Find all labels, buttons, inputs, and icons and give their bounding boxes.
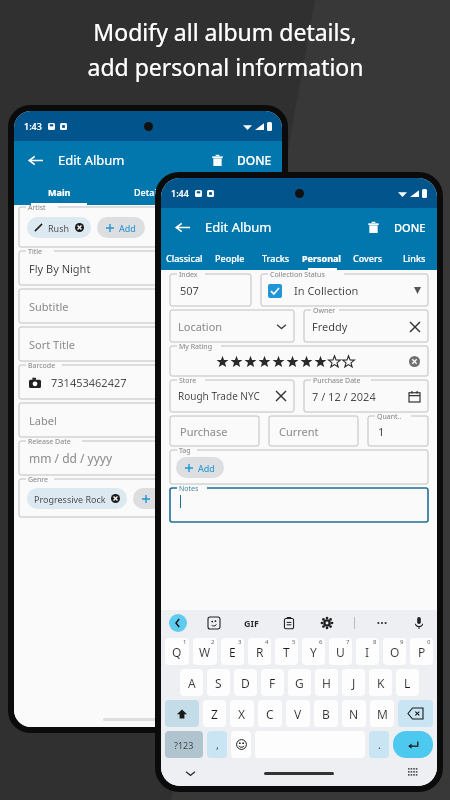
button[interactable]: L: [396, 669, 419, 696]
button[interactable]: P: [410, 638, 433, 665]
button[interactable]: Rate 2: [230, 355, 243, 368]
button[interactable]: Emoji: [231, 731, 251, 758]
button[interactable]: Settings: [317, 613, 337, 633]
button[interactable]: Back: [169, 614, 187, 632]
button[interactable]: Symbols: [165, 731, 203, 758]
button[interactable]: Label: [19, 403, 277, 437]
button[interactable]: Clipboard: [279, 613, 299, 633]
button[interactable]: A: [180, 669, 203, 696]
button[interactable]: Personal: [299, 246, 345, 270]
button[interactable]: Current Value: [269, 416, 358, 446]
button[interactable]: Rough Trade NYC: [170, 380, 294, 412]
button[interactable]: Fly By Night: [19, 251, 277, 285]
staticText: 731453462427: [51, 375, 127, 390]
button[interactable]: Voice input: [409, 613, 429, 633]
button[interactable]: R: [248, 638, 271, 665]
button[interactable]: K: [369, 669, 392, 696]
staticText: Rough Trade NYC: [178, 389, 260, 403]
button[interactable]: Freddy: [304, 310, 428, 342]
button[interactable]: O: [383, 638, 406, 665]
button[interactable]: Add: [176, 457, 224, 478]
button[interactable]: Add: [170, 450, 428, 484]
button[interactable]: DONE: [233, 148, 276, 172]
button[interactable]: C: [258, 700, 282, 727]
button[interactable]: X: [230, 700, 254, 727]
button[interactable]: Rate 5: [272, 355, 285, 368]
staticText: N: [349, 706, 359, 722]
button[interactable]: Delete: [361, 215, 385, 239]
button[interactable]: More: [372, 613, 392, 633]
button[interactable]: GIF: [241, 614, 262, 632]
button[interactable]: Notes: [170, 488, 428, 522]
button[interactable]: Rate 7: [300, 355, 313, 368]
button[interactable]: Links: [391, 246, 437, 270]
button[interactable]: Switch keyboard: [407, 767, 419, 779]
button[interactable]: N: [342, 700, 366, 727]
button[interactable]: Rush: [19, 207, 277, 247]
button[interactable]: Location: [170, 310, 294, 342]
button[interactable]: Progressive Rock: [19, 479, 277, 517]
button[interactable]: Period: [369, 731, 389, 758]
button[interactable]: Back: [169, 214, 195, 240]
button[interactable]: Hide keyboard: [183, 766, 197, 780]
button[interactable]: sticker: [204, 613, 224, 633]
button[interactable]: DONE: [391, 216, 429, 239]
button[interactable]: Y: [302, 638, 325, 665]
button[interactable]: Z: [203, 700, 226, 727]
button[interactable]: Classical: [193, 179, 282, 205]
button[interactable]: Enter: [393, 731, 433, 758]
button[interactable]: V: [286, 700, 310, 727]
button[interactable]: Comma: [207, 731, 227, 758]
button[interactable]: Rate 6: [286, 355, 299, 368]
button[interactable]: 731453462427: [19, 365, 277, 399]
button[interactable]: Covers: [345, 246, 391, 270]
button[interactable]: Details: [104, 179, 193, 205]
button[interactable]: Rate 4: [258, 355, 271, 368]
button[interactable]: Purchase Price: [170, 416, 259, 446]
button[interactable]: Tracks: [253, 246, 299, 270]
button[interactable]: 1: [368, 416, 428, 446]
button[interactable]: Rate 10: [342, 355, 355, 368]
button[interactable]: Rate 9: [328, 355, 341, 368]
button[interactable]: Add: [97, 217, 145, 238]
button[interactable]: U: [329, 638, 352, 665]
staticText: E: [229, 644, 236, 660]
button[interactable]: Rate 8: [314, 355, 327, 368]
button[interactable]: Sort Title: [19, 327, 277, 361]
button[interactable]: 507: [170, 274, 251, 306]
button[interactable]: J: [342, 669, 365, 696]
button[interactable]: 7 / 12 / 2024: [304, 380, 428, 412]
button[interactable]: H: [315, 669, 338, 696]
button[interactable]: Classical: [161, 246, 207, 270]
button[interactable]: G: [288, 669, 311, 696]
button[interactable]: Rate 1: [170, 346, 428, 376]
button[interactable]: Shift: [165, 700, 199, 727]
button[interactable]: Add: [133, 488, 181, 509]
button[interactable]: W: [193, 638, 217, 665]
button[interactable]: Clear rating: [409, 356, 420, 367]
button[interactable]: M: [370, 700, 394, 727]
button[interactable]: I: [356, 638, 379, 665]
button[interactable]: Progressive Rock: [27, 488, 127, 509]
button[interactable]: Rate 3: [244, 355, 257, 368]
button[interactable]: Rate 1: [216, 355, 229, 368]
button[interactable]: mm / dd / yyyy: [19, 441, 277, 475]
button[interactable]: Delete: [205, 148, 229, 172]
button[interactable]: Q: [165, 638, 189, 665]
button[interactable]: D: [234, 669, 257, 696]
button[interactable]: E: [221, 638, 244, 665]
button[interactable]: T: [275, 638, 298, 665]
button[interactable]: Subtitle: [19, 289, 277, 323]
button[interactable]: People: [207, 246, 253, 270]
button[interactable]: F: [261, 669, 284, 696]
button[interactable]: S: [207, 669, 230, 696]
button[interactable]: In Collection checkbox: [261, 274, 428, 306]
button[interactable]: Main: [14, 179, 104, 205]
button[interactable]: In Collection checkbox: [268, 284, 282, 298]
button[interactable]: B: [314, 700, 338, 727]
button[interactable]: Backspace: [398, 700, 433, 727]
staticText: Store: [179, 376, 197, 386]
button[interactable]: Rush: [27, 217, 91, 238]
button[interactable]: Back: [22, 147, 48, 173]
